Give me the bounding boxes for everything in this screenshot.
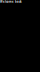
staticText: Welcome back [0, 0, 22, 3]
